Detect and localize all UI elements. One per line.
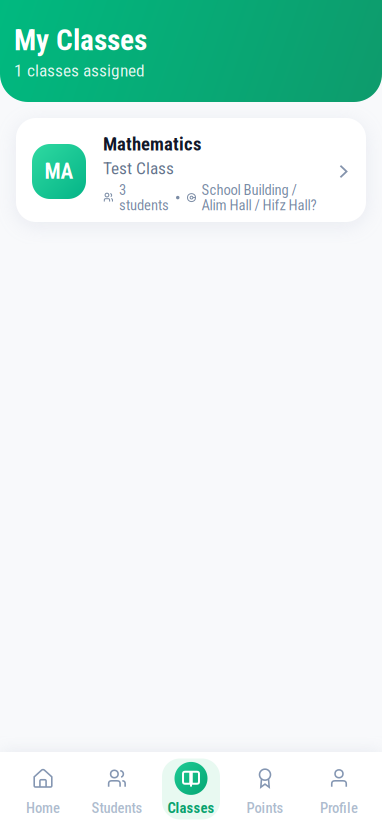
button[interactable]: MA xyxy=(16,118,366,222)
button[interactable]: Classes xyxy=(154,758,228,819)
staticText: MA xyxy=(44,159,73,184)
staticText: Home xyxy=(26,799,60,817)
staticText: Classes xyxy=(167,799,214,817)
button[interactable]: Home xyxy=(6,758,80,819)
staticText: Profile xyxy=(320,799,358,817)
staticText: Mathematics xyxy=(103,133,201,155)
staticText: Students xyxy=(91,799,142,817)
staticText: Points xyxy=(246,799,283,817)
staticText: 3 students xyxy=(119,181,169,214)
button[interactable]: Students xyxy=(80,758,154,819)
staticText: 1 classes assigned xyxy=(14,60,145,81)
staticText: My Classes xyxy=(14,23,147,57)
button[interactable]: Profile xyxy=(302,758,376,819)
staticText: School Building / Alim Hall / Hifz Hall? xyxy=(201,181,316,214)
button[interactable]: Points xyxy=(228,758,302,819)
staticText: Test Class xyxy=(103,158,174,178)
